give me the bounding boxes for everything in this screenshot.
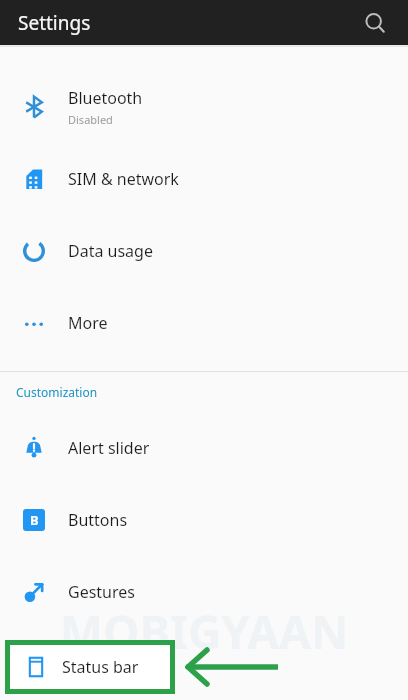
staticText: Bluetooth — [68, 87, 143, 109]
button[interactable]: Status bar — [10, 645, 170, 689]
staticText: Disabled — [68, 112, 113, 127]
staticText: More — [68, 312, 108, 334]
staticText: Status bar — [62, 656, 139, 678]
staticText: SIM & network — [68, 168, 179, 190]
button[interactable]: Bluetooth — [0, 71, 408, 143]
staticText: Alert slider — [68, 437, 150, 459]
staticText: Customization — [16, 384, 98, 400]
staticText: MOBIGYAAN — [0, 600, 408, 663]
staticText: Gestures — [68, 581, 135, 603]
staticText: Settings — [18, 10, 91, 36]
button[interactable]: Search — [354, 2, 396, 44]
button[interactable]: Alert slider — [0, 412, 408, 484]
staticText: B — [30, 511, 39, 529]
button[interactable]: Gestures — [0, 556, 408, 628]
staticText: Data usage — [68, 240, 153, 262]
button[interactable]: SIM & network — [0, 143, 408, 215]
button[interactable]: More — [0, 287, 408, 359]
button[interactable]: B — [0, 484, 408, 556]
button[interactable]: Data usage — [0, 215, 408, 287]
staticText: Buttons — [68, 509, 128, 531]
